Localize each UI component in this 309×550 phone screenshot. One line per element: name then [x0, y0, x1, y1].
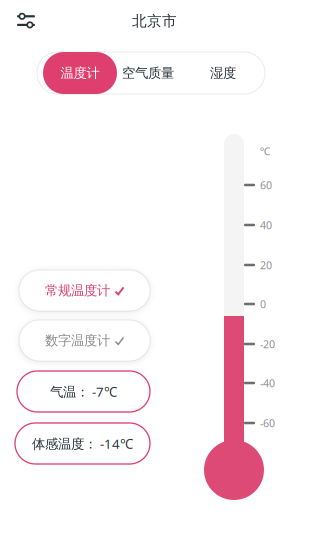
- staticText: -40: [260, 376, 275, 390]
- staticText: 温度计: [60, 65, 99, 81]
- staticText: 常规温度计: [45, 282, 110, 299]
- staticText: 数字温度计: [45, 332, 110, 349]
- staticText: 60: [260, 178, 272, 192]
- button[interactable]: 数字温度计: [19, 320, 150, 361]
- button[interactable]: Filters: [9, 6, 43, 36]
- staticText: -60: [260, 416, 275, 430]
- staticText: 湿度: [210, 65, 236, 81]
- staticText: 北京市: [132, 12, 177, 30]
- staticText: ℃: [260, 144, 271, 158]
- button[interactable]: 湿度: [198, 52, 248, 94]
- button[interactable]: 空气质量: [115, 52, 181, 94]
- button[interactable]: 常规温度计: [19, 270, 150, 311]
- staticText: 0: [260, 297, 266, 311]
- staticText: -20: [260, 337, 275, 351]
- staticText: 体感温度： -14℃: [32, 435, 133, 452]
- button[interactable]: 温度计: [43, 52, 117, 94]
- button[interactable]: 体感温度： -14℃: [15, 423, 150, 464]
- staticText: 40: [260, 218, 272, 232]
- button[interactable]: 气温： -7℃: [17, 371, 150, 412]
- staticText: 气温： -7℃: [50, 383, 117, 400]
- staticText: 20: [260, 258, 272, 272]
- staticText: 空气质量: [122, 65, 174, 81]
